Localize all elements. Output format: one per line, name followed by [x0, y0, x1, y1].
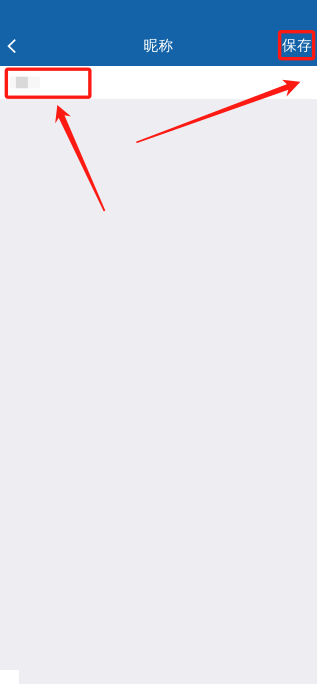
button[interactable]: Back — [0, 27, 27, 65]
staticText: 保存 — [282, 36, 312, 54]
button[interactable]: 昵称 — [0, 66, 317, 99]
staticText: 昵称 — [143, 36, 173, 54]
button[interactable]: 保存 — [275, 26, 317, 64]
